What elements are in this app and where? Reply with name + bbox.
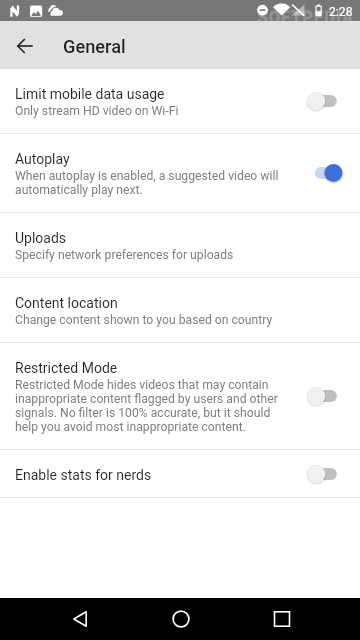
staticText: Change content shown to you based on cou… <box>15 313 273 327</box>
staticText: When autoplay is enabled, a suggested vi… <box>15 169 283 197</box>
button[interactable]: Restricted Mode <box>0 343 360 449</box>
button[interactable]: Content location <box>0 278 360 342</box>
staticText: Restricted Mode hides videos that may co… <box>15 378 283 434</box>
staticText: Restricted Mode <box>15 360 118 376</box>
button[interactable]: Uploads <box>0 213 360 277</box>
button[interactable]: Off <box>300 383 338 409</box>
staticText: Limit mobile data usage <box>15 86 165 102</box>
staticText: SOFTPEDIA <box>258 8 355 27</box>
button[interactable]: Autoplay <box>0 134 360 212</box>
button[interactable]: Home <box>157 598 204 640</box>
staticText: General <box>63 36 126 57</box>
button[interactable]: Off <box>300 461 338 487</box>
button[interactable]: Enable stats for nerds <box>0 450 360 497</box>
button[interactable]: Off <box>300 88 338 114</box>
staticText: Content location <box>15 295 118 311</box>
button[interactable]: Back <box>56 598 103 640</box>
button[interactable]: Limit mobile data usage <box>0 69 360 133</box>
button[interactable]: On <box>300 160 338 186</box>
button[interactable]: Recent apps <box>258 598 305 640</box>
staticText: Enable stats for nerds <box>15 467 152 483</box>
staticText: 2:28 <box>329 5 353 19</box>
button[interactable]: Navigate up <box>9 30 41 62</box>
staticText: Autoplay <box>15 151 70 167</box>
staticText: Specify network preferences for uploads <box>15 248 234 262</box>
staticText: Only stream HD video on Wi-Fi <box>15 104 179 118</box>
staticText: Uploads <box>15 230 67 246</box>
